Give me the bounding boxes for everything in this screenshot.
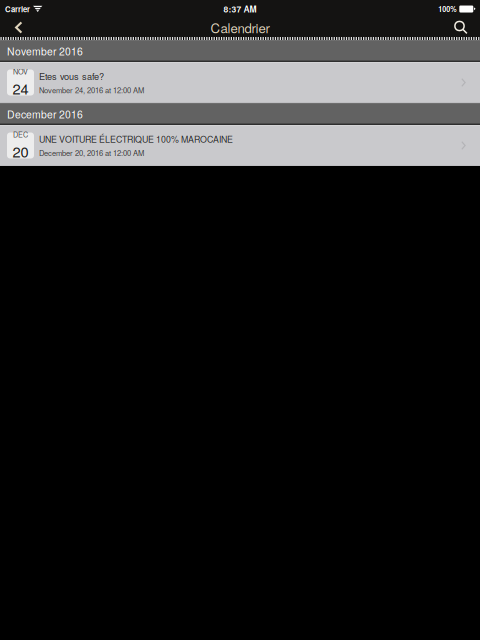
button[interactable]: Search [442,18,480,37]
button[interactable]: Back [0,18,38,37]
button[interactable]: NOV [0,62,480,103]
staticText: NOV [13,66,28,77]
button[interactable]: DEC [0,125,480,166]
staticText: UNE VOITURE ÉLECTRIQUE 100% MAROCAINE [39,133,233,145]
staticText: 24 [12,78,28,99]
staticText: 100% [438,4,456,14]
staticText: December 2016 [7,107,83,121]
staticText: Etes vous safe? [39,69,104,83]
staticText: November 24, 2016 at 12:00 AM [39,85,144,95]
staticText: November 2016 [7,44,83,58]
staticText: Carrier [5,3,30,15]
staticText: December 20, 2016 at 12:00 AM [39,147,144,158]
staticText: DEC [13,129,28,140]
staticText: 8:37 AM [223,3,256,15]
staticText: Calendrier [210,18,269,37]
staticText: 20 [12,141,28,162]
